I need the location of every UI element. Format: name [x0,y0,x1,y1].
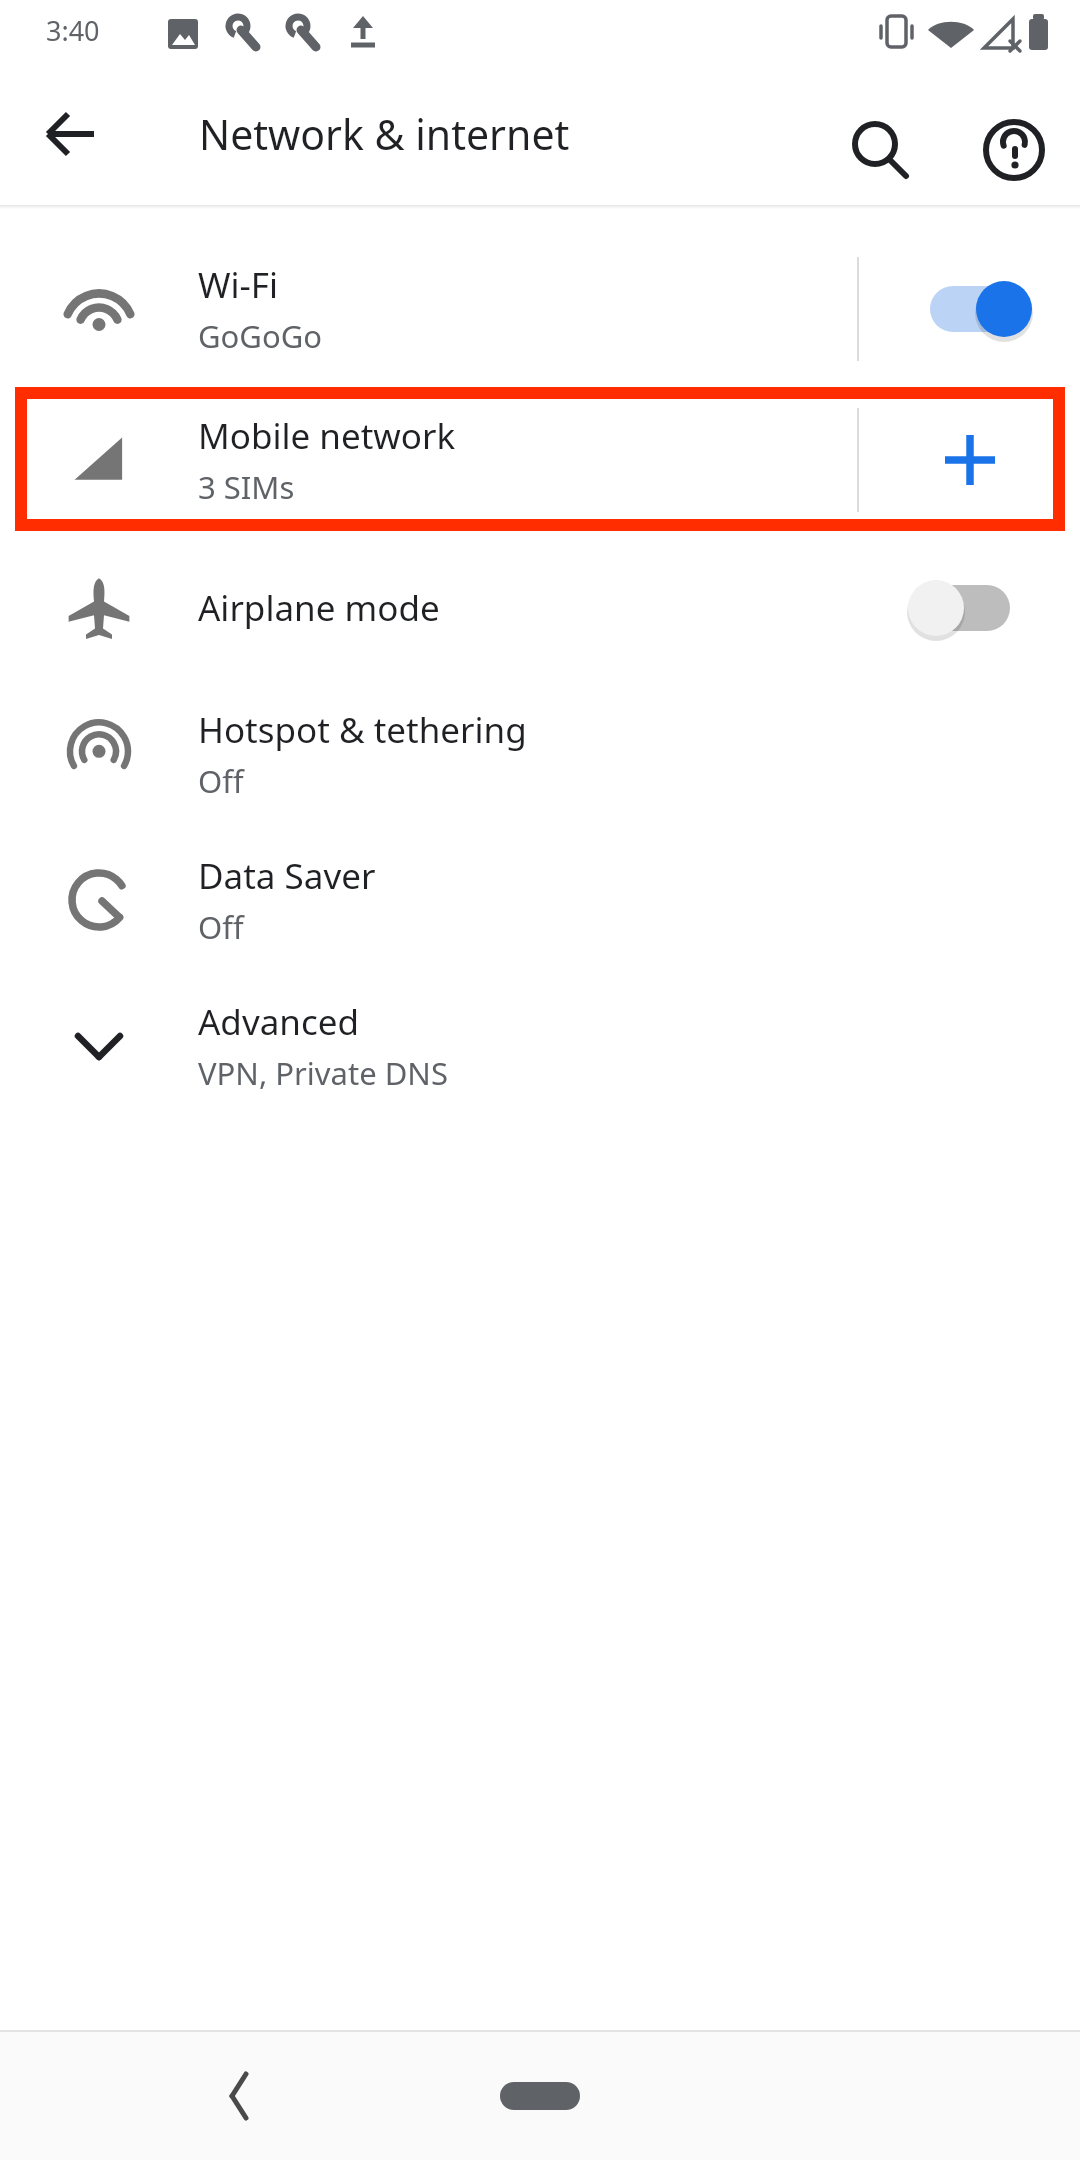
button[interactable]: Mobile network [0,385,1080,535]
button[interactable]: On [905,267,1035,351]
staticText: Data Saver [198,852,376,900]
button[interactable]: Wi-Fi [0,233,1080,385]
button[interactable]: Data Saver [0,827,1080,973]
button[interactable]: Back [28,90,116,178]
staticText: Hotspot & tethering [198,706,527,754]
button[interactable]: Search [836,106,924,194]
staticText: 3 SIMs [198,466,295,508]
button[interactable]: Advanced [0,973,1080,1119]
staticText: Network & internet [199,106,570,162]
staticText: Off [198,906,244,948]
staticText: 3:40 [46,12,100,49]
staticText: GoGoGo [198,315,322,357]
button[interactable]: Off [905,566,1035,650]
staticText: VPN, Private DNS [198,1052,448,1094]
staticText: Off [198,760,244,802]
button[interactable]: Add SIM [924,414,1016,506]
staticText: Mobile network [198,412,456,460]
staticText: Airplane mode [198,584,440,632]
staticText: Wi-Fi [198,261,279,309]
button[interactable]: Back [196,2056,276,2136]
button[interactable]: Home [475,2060,605,2132]
button[interactable]: Hotspot & tethering [0,681,1080,827]
button[interactable]: Airplane mode [0,535,1080,681]
staticText: Advanced [198,998,360,1046]
button[interactable]: Help [970,106,1058,194]
